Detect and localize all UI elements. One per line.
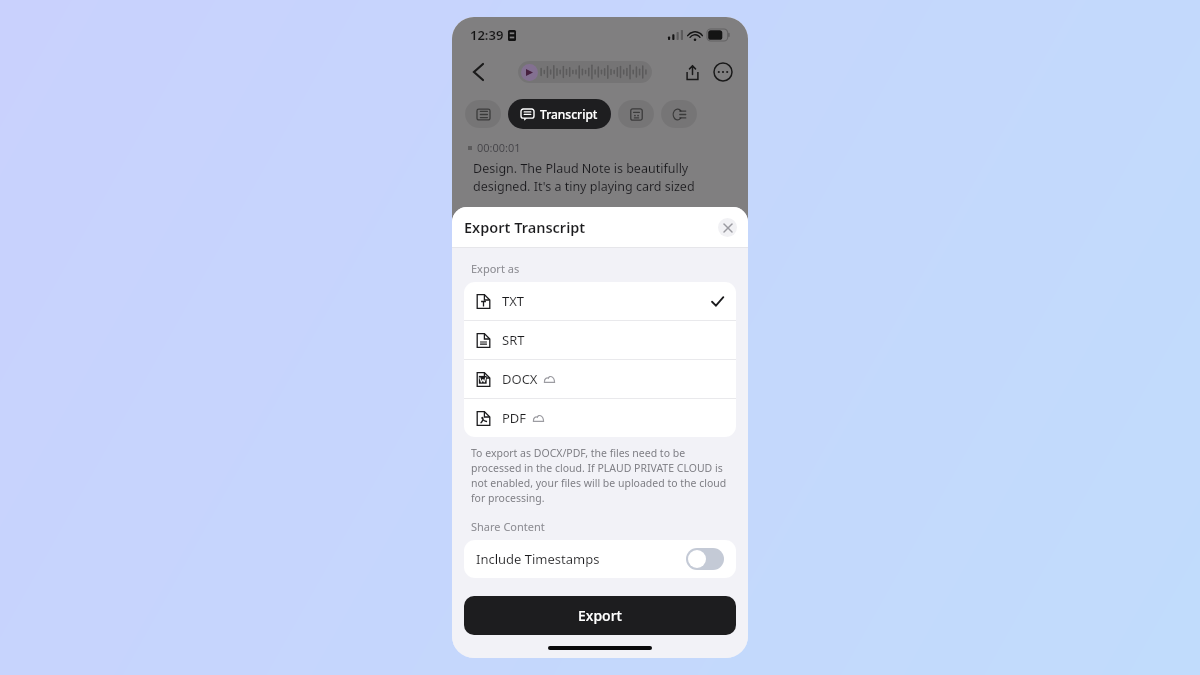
button[interactable]: PDF [464,399,736,437]
button[interactable]: Mind map [661,100,697,128]
button[interactable]: TXT [464,282,736,320]
button[interactable]: Include Timestamps [464,540,736,578]
button[interactable]: Close [718,218,737,237]
staticText: SRT [502,331,525,349]
button[interactable]: Share [679,59,705,85]
staticText: Design. The Plaud Note is beautifully de… [473,160,695,195]
staticText: Transcript [540,106,598,122]
staticText: To export as DOCX/PDF, the files need to… [471,446,730,505]
staticText: Share Content [471,519,545,534]
staticText: Export [578,606,622,625]
button[interactable]: Transcript [508,99,611,129]
staticText: Export Transcript [464,217,586,237]
staticText: 00:00:01 [477,140,521,155]
button[interactable]: DOCX [464,360,736,398]
button[interactable]: Play recording [518,61,652,83]
staticText: Include Timestamps [476,550,600,568]
staticText: PDF [502,409,527,427]
staticText: DOCX [502,370,538,388]
button[interactable]: Summary [465,100,501,128]
button[interactable]: Export [464,596,736,635]
button[interactable]: Back [465,59,491,85]
staticText: TXT [502,292,525,310]
button[interactable]: Notes [618,100,654,128]
button[interactable]: More options [711,60,735,84]
staticText: 12:39 [470,26,504,44]
staticText: Export as [471,261,520,276]
button[interactable]: SRT [464,321,736,359]
